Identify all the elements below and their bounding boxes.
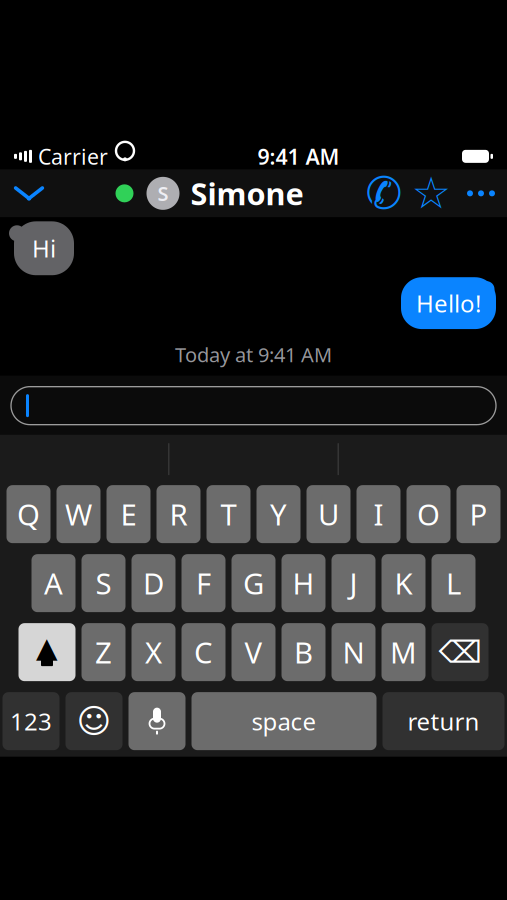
staticText: C — [194, 633, 213, 672]
staticText: P — [469, 495, 487, 534]
staticText: F — [196, 564, 211, 603]
button[interactable]: O — [406, 485, 450, 543]
button[interactable]: Delete — [431, 623, 488, 681]
button[interactable]: W — [56, 485, 100, 543]
button[interactable]: P — [456, 485, 500, 543]
button[interactable]: Hide details — [0, 169, 58, 217]
button[interactable]: R — [156, 485, 200, 543]
staticText: U — [318, 495, 339, 534]
button[interactable]: M — [381, 623, 425, 681]
staticText: N — [342, 633, 364, 672]
button[interactable]: Call — [361, 169, 407, 217]
staticText: 9:41 AM — [257, 142, 339, 170]
staticText: L — [446, 564, 461, 603]
staticText: A — [44, 564, 63, 603]
staticText: T — [220, 495, 236, 534]
staticText: Z — [95, 633, 112, 672]
staticText: return — [407, 705, 479, 737]
button[interactable]: U — [306, 485, 350, 543]
staticText: Today at 9:41 AM — [175, 341, 332, 368]
button[interactable]: X — [131, 623, 175, 681]
staticText: X — [145, 633, 162, 672]
button[interactable]: 123 — [2, 692, 59, 750]
button[interactable]: G — [231, 554, 275, 612]
staticText: ☺ — [76, 702, 111, 740]
staticText: space — [251, 705, 316, 737]
button[interactable]: I — [356, 485, 400, 543]
staticText: ☆ — [411, 168, 450, 218]
button[interactable]: D — [131, 554, 175, 612]
staticText: Hello! — [416, 287, 481, 319]
button[interactable]: T — [206, 485, 250, 543]
staticText: H — [292, 564, 314, 603]
staticText: B — [294, 633, 313, 672]
staticText: Simone — [190, 173, 303, 214]
staticText: 123 — [10, 705, 52, 737]
button[interactable]: H — [281, 554, 325, 612]
button[interactable]: More — [455, 169, 507, 217]
staticText: M — [390, 633, 417, 672]
staticText: W — [65, 495, 92, 534]
button[interactable]: S — [81, 554, 125, 612]
staticText: K — [394, 564, 412, 603]
staticText: ⌫ — [438, 635, 481, 669]
staticText: Y — [270, 495, 287, 534]
button[interactable]: return — [382, 692, 504, 750]
staticText: R — [169, 495, 187, 534]
staticText: ▲ — [36, 632, 58, 664]
button[interactable]: B — [281, 623, 325, 681]
staticText: D — [143, 564, 164, 603]
staticText: S — [157, 180, 168, 207]
button[interactable]: E — [106, 485, 150, 543]
button[interactable]: J — [331, 554, 375, 612]
button[interactable]: Dictation — [128, 692, 185, 750]
button[interactable]: space — [191, 692, 376, 750]
button[interactable]: Q — [6, 485, 50, 543]
staticText: I — [373, 495, 383, 534]
staticText: ✆ — [365, 168, 402, 218]
staticText: J — [349, 564, 357, 603]
staticText: V — [244, 633, 262, 672]
button[interactable]: L — [431, 554, 475, 612]
staticText: O — [417, 495, 440, 534]
staticText: E — [120, 495, 136, 534]
button[interactable]: A — [31, 554, 75, 612]
button[interactable]: C — [181, 623, 225, 681]
staticText: S — [95, 564, 111, 603]
button[interactable]: Shift — [18, 623, 75, 681]
staticText: Q — [17, 495, 40, 534]
button[interactable]: F — [181, 554, 225, 612]
button[interactable]: Message text field — [0, 376, 507, 435]
button[interactable]: Emoji — [65, 692, 122, 750]
staticText: Hi — [32, 232, 56, 264]
button[interactable]: Favorite — [407, 169, 455, 217]
button[interactable]: Z — [81, 623, 125, 681]
staticText: Carrier — [38, 142, 108, 170]
button[interactable]: Y — [256, 485, 300, 543]
button[interactable]: K — [381, 554, 425, 612]
staticText: G — [243, 564, 264, 603]
button[interactable]: V — [231, 623, 275, 681]
button[interactable]: N — [331, 623, 375, 681]
